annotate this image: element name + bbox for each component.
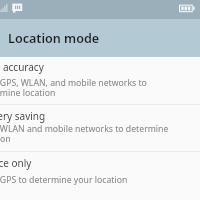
staticText: Device only <box>0 156 32 170</box>
staticText: High accuracy <box>0 60 44 74</box>
button[interactable]: Device only <box>0 152 200 200</box>
staticText: Battery saving <box>0 109 46 123</box>
button[interactable]: High accuracy <box>0 57 200 104</box>
staticText: Location mode <box>8 30 100 47</box>
staticText: Uses GPS to determine your location <box>0 174 176 186</box>
staticText: Uses WLAN and mobile networks to determi… <box>0 123 176 144</box>
staticText: Uses GPS, WLAN, and mobile networks to d… <box>0 77 176 98</box>
button[interactable]: Battery saving <box>0 105 200 151</box>
